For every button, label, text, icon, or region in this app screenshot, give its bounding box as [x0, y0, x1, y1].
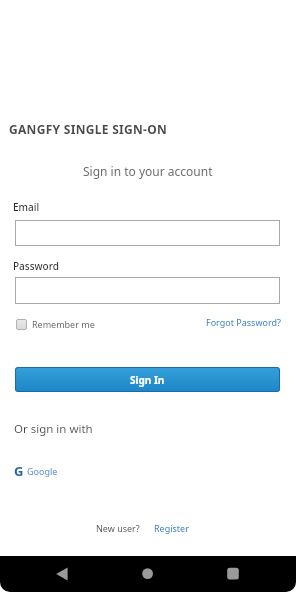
staticText: Or sign in with: [14, 421, 93, 437]
staticText: G: [14, 462, 24, 480]
staticText: Sign In: [130, 373, 165, 387]
button[interactable]: Remember me: [16, 318, 95, 330]
button[interactable]: [220, 561, 246, 587]
staticText: Register: [154, 522, 189, 534]
staticText: Forgot Password?: [206, 316, 281, 328]
button[interactable]: [15, 277, 280, 304]
staticText: Password: [13, 259, 59, 273]
button[interactable]: [15, 220, 280, 246]
staticText: New user?: [96, 522, 140, 534]
staticText: GANGFY SINGLE SIGN-ON: [9, 121, 168, 137]
staticText: Email: [13, 200, 40, 214]
button[interactable]: G: [14, 462, 58, 480]
button[interactable]: [135, 561, 161, 587]
staticText: Sign in to your account: [83, 163, 213, 179]
button[interactable]: [48, 561, 74, 587]
staticText: Remember me: [32, 318, 95, 330]
button[interactable]: Register: [154, 522, 189, 534]
button[interactable]: Sign In: [15, 367, 280, 392]
button[interactable]: Forgot Password?: [206, 316, 281, 328]
staticText: Google: [27, 465, 58, 477]
